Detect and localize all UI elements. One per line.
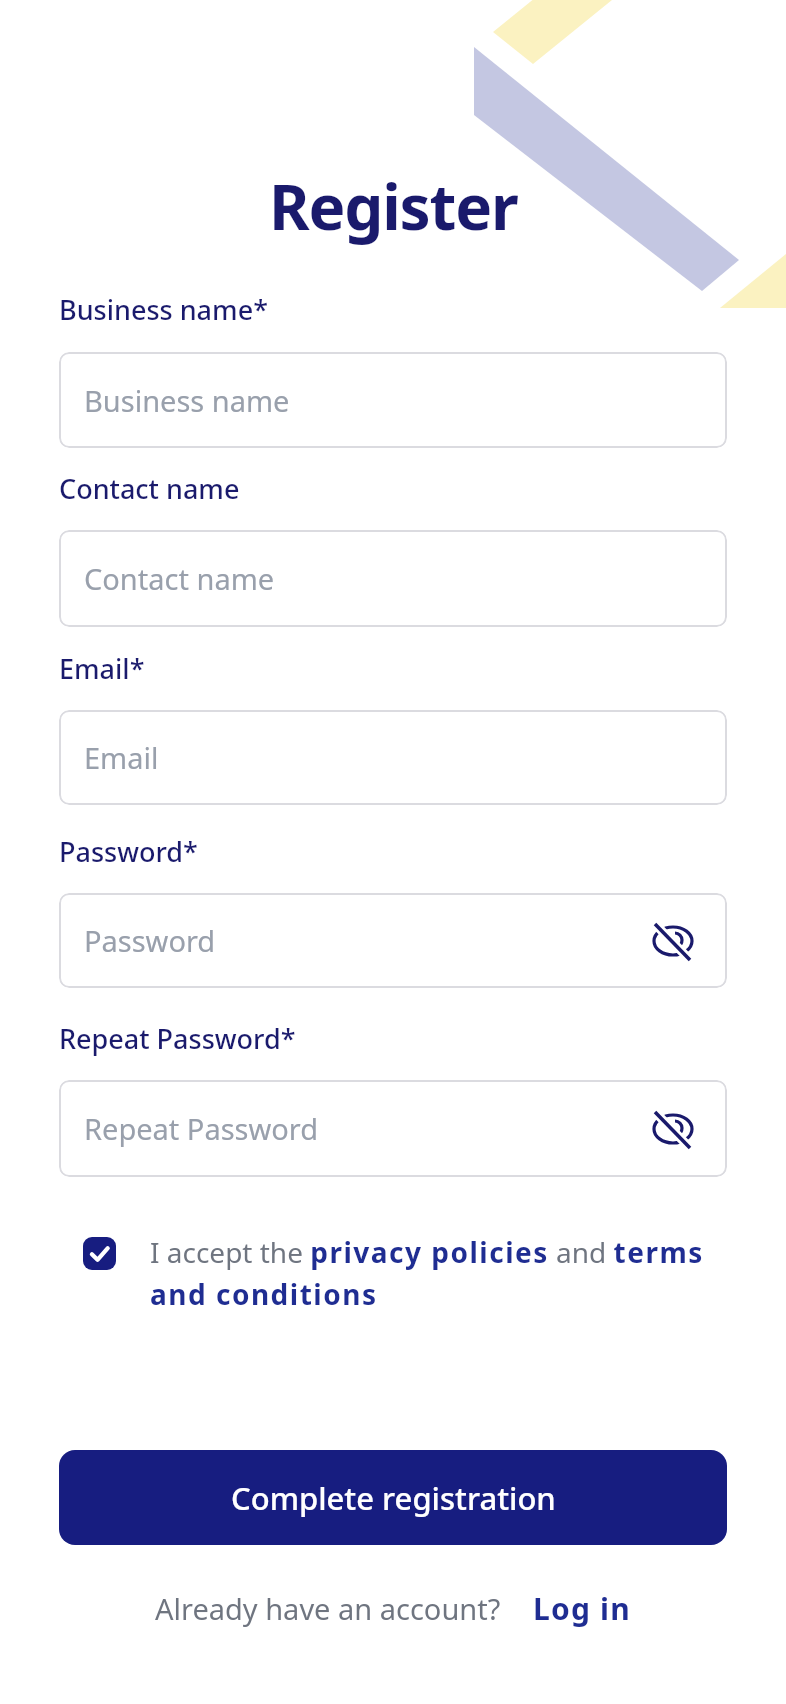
staticText: Already have an account? bbox=[155, 1589, 501, 1628]
staticText: Email* bbox=[59, 650, 145, 687]
staticText: Password bbox=[84, 921, 216, 960]
staticText: Business name bbox=[84, 381, 290, 420]
staticText: Contact name bbox=[84, 559, 275, 598]
staticText: I accept the privacy policies and terms … bbox=[150, 1233, 704, 1313]
button[interactable]: Log in bbox=[533, 1588, 631, 1629]
button[interactable]: Business name bbox=[59, 352, 727, 448]
staticText: Repeat Password* bbox=[59, 1020, 296, 1057]
staticText: Email bbox=[84, 738, 159, 777]
button[interactable]: Repeat Password bbox=[59, 1080, 727, 1177]
staticText: Password* bbox=[59, 833, 198, 870]
staticText: Business name* bbox=[59, 291, 268, 328]
staticText: Register bbox=[269, 164, 518, 248]
button[interactable]: Contact name bbox=[59, 530, 727, 627]
staticText: Complete registration bbox=[231, 1477, 556, 1519]
button[interactable]: Email bbox=[59, 710, 727, 805]
staticText: Contact name bbox=[59, 470, 240, 507]
button[interactable]: Password bbox=[59, 893, 727, 988]
staticText: Repeat Password bbox=[84, 1109, 319, 1148]
button[interactable]: Complete registration bbox=[59, 1450, 727, 1545]
button[interactable]: I accept the privacy policies and terms … bbox=[83, 1233, 733, 1313]
